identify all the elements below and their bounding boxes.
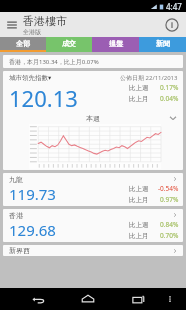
button[interactable]: 全部 [0,37,46,52]
staticText: 本週 [86,114,100,123]
button[interactable]: 香港 [3,209,183,242]
button[interactable]: 城市領先指數▾ [3,71,183,170]
staticText: 比上週 [129,185,149,193]
staticText: 0.17% [160,83,179,92]
button[interactable]: 香港，本月130.34，比上月0.07% [3,55,183,68]
button[interactable]: Home [80,291,96,307]
staticText: 4:47 [166,1,182,12]
button[interactable]: 成交 [46,37,92,52]
staticText: 新聞 [156,39,170,48]
staticText: 比上月 [129,95,149,103]
staticText: 公佈日期 22/11/2013 [120,74,178,82]
staticText: 全部 [16,39,30,48]
button[interactable]: Info [164,17,180,33]
button[interactable]: Menu [4,17,20,33]
staticText: 城市領先指數▾ [9,74,52,82]
button[interactable]: 搵盤 [92,37,139,52]
button[interactable]: 九龍 [3,173,183,206]
staticText: 0.97% [160,195,179,204]
button[interactable]: 新界西 [3,245,183,256]
staticText: 九龍 [9,175,23,184]
staticText: 新界西 [9,246,30,255]
staticText: 香港 [9,211,23,220]
staticText: 0.04% [160,94,179,103]
button[interactable]: Back [30,291,46,307]
staticText: 比上週 [129,84,149,92]
staticText: 129.68 [9,220,56,240]
staticText: 0.70% [160,231,179,240]
staticText: 120.13 [9,83,78,113]
staticText: 搵盤 [109,39,123,48]
staticText: 全港版 [23,28,41,36]
button[interactable]: Expand [168,113,178,123]
button[interactable]: More options [164,293,176,305]
staticText: 比上月 [129,232,149,240]
button[interactable]: 新聞 [139,37,186,52]
staticText: -0.54% [158,184,179,193]
staticText: 0.84% [160,220,179,229]
staticText: 比上週 [129,221,149,229]
button[interactable]: Recents [130,291,146,307]
staticText: 119.73 [9,184,56,204]
staticText: 香港，本月130.34，比上月0.07% [9,58,99,66]
staticText: 成交 [62,39,76,48]
staticText: 香港樓市 [23,14,67,28]
staticText: 比上月 [129,196,149,204]
